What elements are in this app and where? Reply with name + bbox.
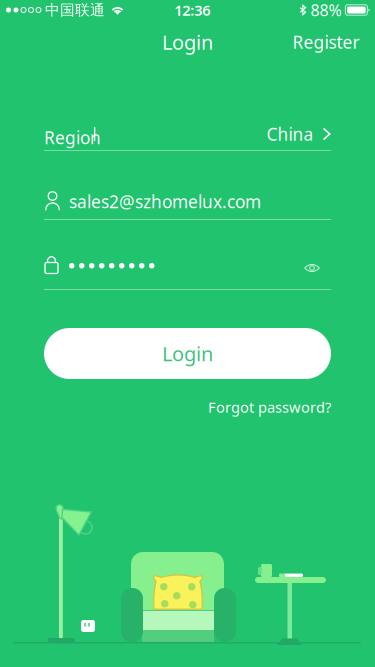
staticText: 中国联通 bbox=[45, 1, 105, 19]
staticText: 12:36 bbox=[174, 0, 210, 20]
staticText: Login bbox=[162, 340, 213, 367]
button[interactable]: Show password bbox=[294, 253, 330, 283]
staticText: Register bbox=[292, 30, 359, 53]
button[interactable]: Forgot password? bbox=[44, 398, 331, 416]
staticText: sales2@szhomelux.com bbox=[69, 190, 261, 213]
button[interactable]: Login bbox=[44, 328, 331, 379]
staticText: 88% bbox=[310, 0, 341, 21]
button[interactable]: Register bbox=[285, 20, 367, 64]
staticText: Forgot password? bbox=[208, 397, 331, 417]
staticText: Region bbox=[44, 126, 101, 149]
staticText: Login bbox=[162, 29, 213, 55]
staticText: China bbox=[266, 122, 313, 145]
button[interactable]: Region bbox=[44, 126, 331, 162]
